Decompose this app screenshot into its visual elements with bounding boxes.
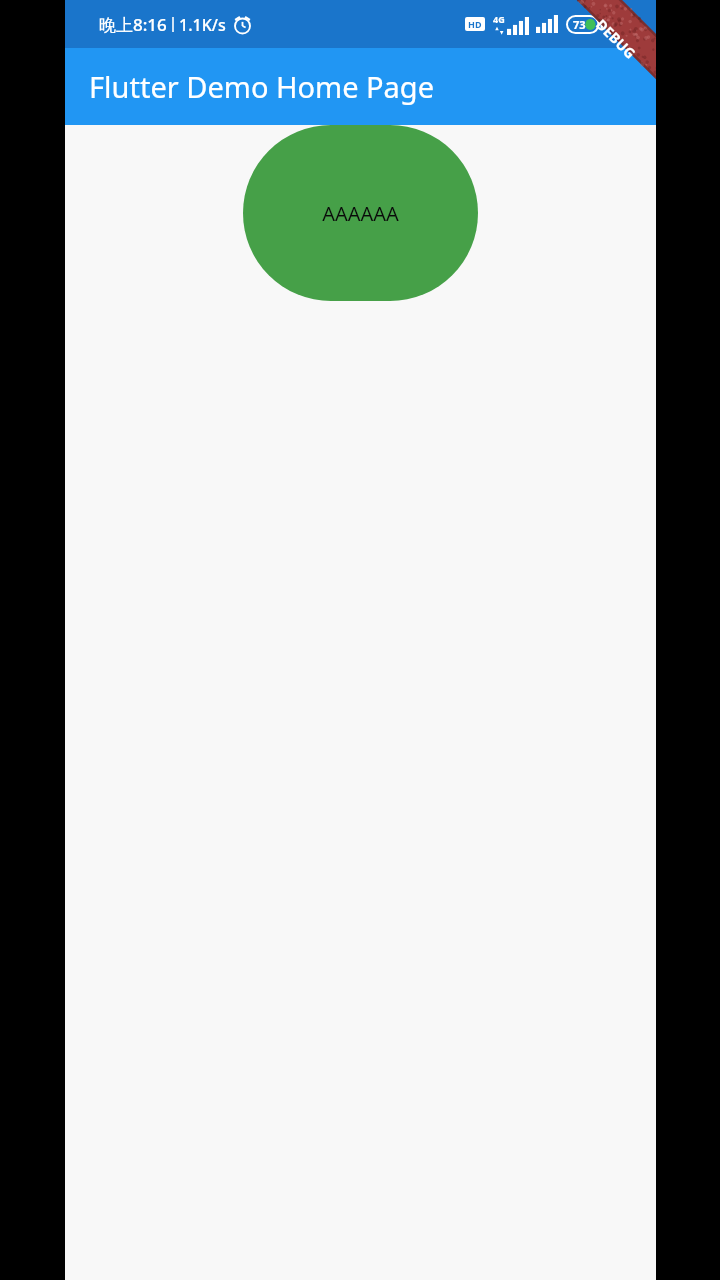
other: Alarm set xyxy=(233,15,252,34)
button[interactable]: AAAAAA xyxy=(243,125,478,301)
staticText: 73 xyxy=(573,17,586,32)
staticText: Flutter Demo Home Page xyxy=(89,67,435,106)
staticText: 1.1K/s xyxy=(179,14,226,36)
staticText: 4G xyxy=(493,13,505,25)
staticText: DEBUG xyxy=(592,15,640,63)
staticText: AAAAAA xyxy=(322,200,399,227)
staticText: 晚上8:16 xyxy=(99,13,167,36)
staticText: HD xyxy=(468,18,482,30)
